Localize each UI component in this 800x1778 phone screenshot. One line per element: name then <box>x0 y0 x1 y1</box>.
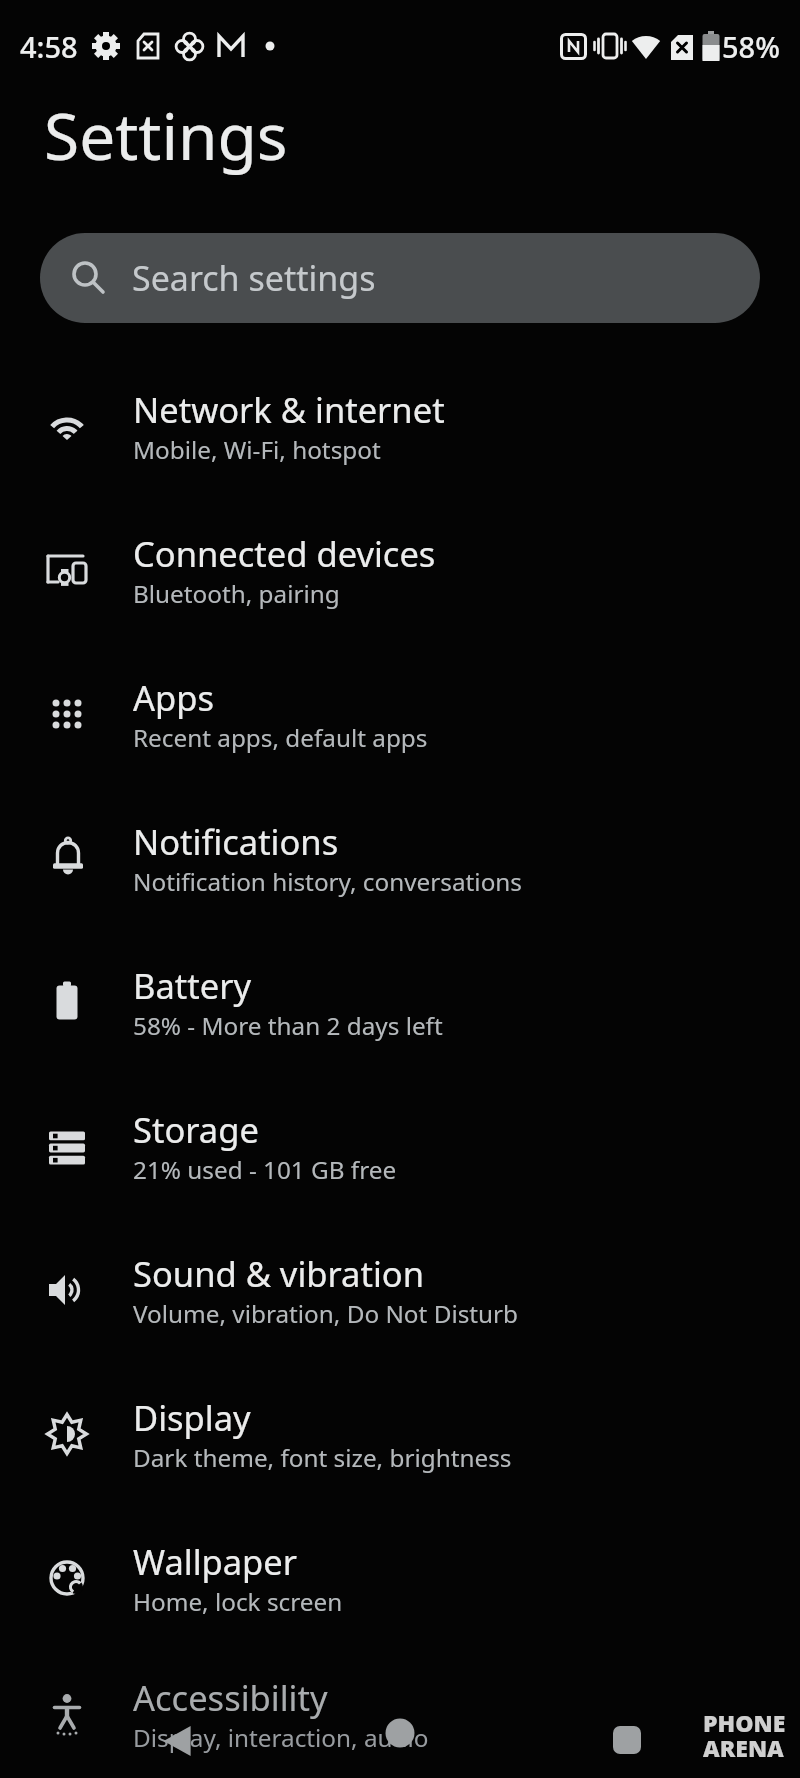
button[interactable]: Storage <box>0 1074 800 1218</box>
staticText: 58% <box>722 27 780 66</box>
staticText: Home, lock screen <box>133 1585 343 1618</box>
staticText: Battery <box>133 962 251 1009</box>
button[interactable]: Connected devices <box>0 498 800 642</box>
staticText: Network & internet <box>133 386 445 433</box>
staticText: PHONE ARENA <box>703 1707 786 1764</box>
button[interactable]: Wallpaper <box>0 1506 800 1650</box>
button[interactable] <box>372 1705 428 1761</box>
staticText: Wallpaper <box>133 1538 298 1585</box>
staticText: Accessibility <box>133 1674 328 1721</box>
staticText: Bluetooth, pairing <box>133 577 340 610</box>
staticText: Display, interaction, audio <box>133 1721 429 1754</box>
button[interactable]: Accessibility <box>0 1650 800 1778</box>
button[interactable]: Network & internet <box>0 354 800 498</box>
staticText: Search settings <box>132 255 376 301</box>
button[interactable]: Sound & vibration <box>0 1218 800 1362</box>
button[interactable]: Search settings <box>40 233 760 323</box>
staticText: Recent apps, default apps <box>133 721 428 754</box>
staticText: Settings <box>44 92 288 179</box>
staticText: Volume, vibration, Do Not Disturb <box>133 1297 519 1330</box>
button[interactable]: Notifications <box>0 786 800 930</box>
staticText: Notifications <box>133 818 339 865</box>
staticText: Apps <box>133 674 215 721</box>
staticText: Mobile, Wi-Fi, hotspot <box>133 433 381 466</box>
button[interactable] <box>599 1712 655 1768</box>
staticText: Storage <box>133 1106 259 1153</box>
button[interactable] <box>150 1713 206 1769</box>
staticText: Notification history, conversations <box>133 865 522 898</box>
staticText: Dark theme, font size, brightness <box>133 1441 512 1474</box>
staticText: 4:58 <box>20 27 78 66</box>
staticText: 58% - More than 2 days left <box>133 1009 443 1042</box>
staticText: Display <box>133 1394 251 1441</box>
button[interactable]: Apps <box>0 642 800 786</box>
staticText: Sound & vibration <box>133 1250 424 1297</box>
button[interactable]: Display <box>0 1362 800 1506</box>
staticText: Connected devices <box>133 530 436 577</box>
staticText: 21% used - 101 GB free <box>133 1153 397 1186</box>
button[interactable]: Battery <box>0 930 800 1074</box>
